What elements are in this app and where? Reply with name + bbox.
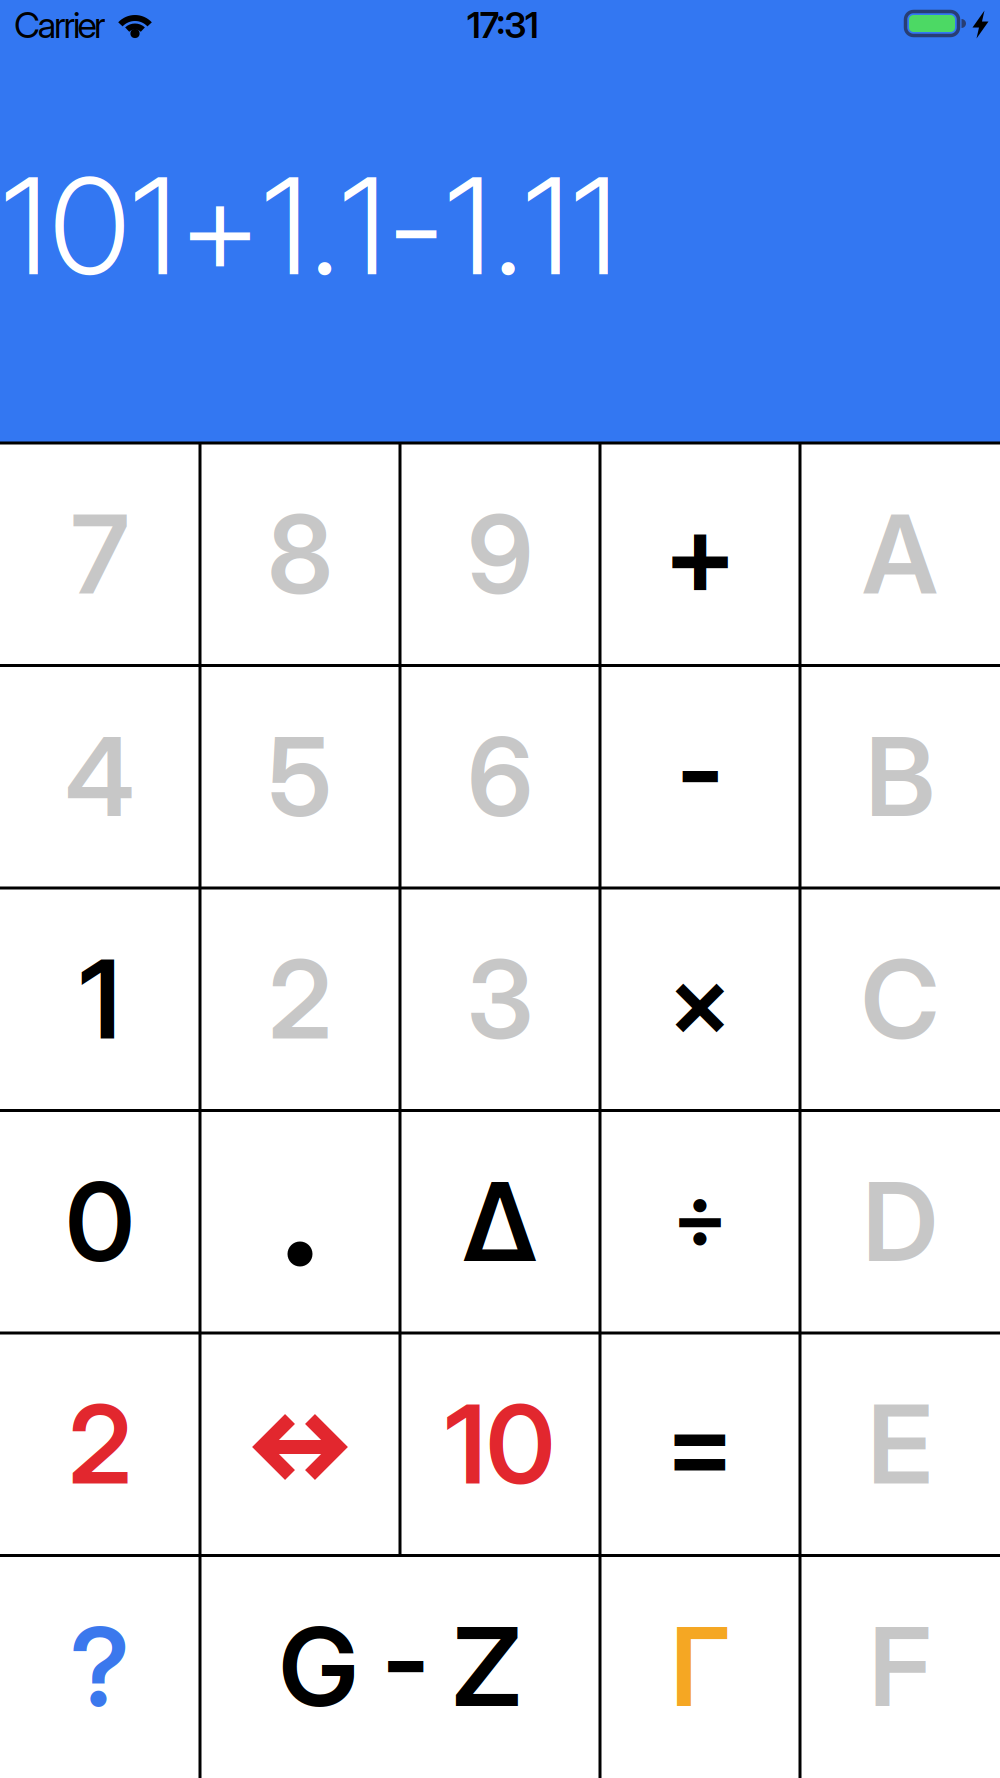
staticText: E: [867, 1380, 932, 1508]
staticText: 5: [268, 713, 332, 840]
staticText: 0: [65, 1158, 134, 1285]
staticText: -: [676, 705, 723, 832]
staticText: 1: [446, 147, 492, 304]
staticText: F: [869, 1603, 931, 1730]
staticText: =: [665, 1380, 735, 1508]
staticText: ÷: [672, 1165, 728, 1267]
staticText: ×: [668, 942, 732, 1058]
staticText: +: [179, 147, 260, 304]
staticText: -: [389, 147, 444, 304]
staticText: 7: [71, 490, 129, 618]
staticText: G - Z: [279, 1603, 521, 1730]
staticText: Δ: [463, 1158, 537, 1285]
staticText: 1: [341, 147, 387, 304]
staticText: 2: [68, 1380, 131, 1508]
staticText: 1: [131, 147, 177, 304]
staticText: 1: [2, 147, 48, 304]
staticText: .: [310, 147, 338, 304]
staticText: C: [861, 935, 939, 1063]
staticText: B: [865, 713, 934, 840]
staticText: +: [663, 486, 736, 620]
staticText: 0: [50, 147, 129, 304]
staticText: A: [862, 490, 937, 618]
staticText: 1: [572, 147, 618, 304]
staticText: 3: [467, 935, 533, 1063]
staticText: 2: [268, 935, 331, 1063]
staticText: 17:31: [467, 4, 539, 46]
staticText: 4: [65, 713, 135, 840]
staticText: Carrier: [14, 4, 106, 46]
staticText: 1: [262, 147, 308, 304]
staticText: Γ: [670, 1603, 729, 1730]
staticText: D: [862, 1158, 937, 1285]
staticText: ?: [70, 1603, 130, 1730]
staticText: 8: [267, 490, 332, 618]
staticText: 6: [467, 713, 532, 840]
staticText: .: [494, 147, 522, 304]
staticText: 9: [467, 490, 532, 618]
staticText: 10: [445, 1380, 555, 1508]
staticText: 1: [79, 935, 120, 1063]
staticText: 1: [524, 147, 570, 304]
